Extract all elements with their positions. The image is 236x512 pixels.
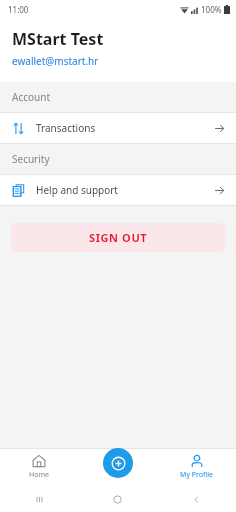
button[interactable]: SIGN OUT xyxy=(11,223,225,252)
staticText: MStart Test xyxy=(12,28,104,50)
staticText: Home xyxy=(29,470,49,480)
staticText: Account xyxy=(12,90,51,104)
button[interactable]: Home xyxy=(0,448,78,486)
staticText: My Profile xyxy=(180,470,213,480)
button[interactable]: Help and support xyxy=(0,175,236,205)
staticText: Security xyxy=(12,152,50,166)
staticText: Transactions xyxy=(36,121,96,135)
staticText: 11:00 xyxy=(8,4,29,15)
button[interactable]: Transactions xyxy=(0,113,236,143)
button[interactable]: Add xyxy=(103,448,133,478)
staticText: ewallet@mstart.hr xyxy=(12,54,99,68)
staticText: Help and support xyxy=(36,183,118,197)
button[interactable]: My Profile xyxy=(157,448,236,486)
staticText: 100% xyxy=(201,4,222,15)
staticText: SIGN OUT xyxy=(89,230,148,245)
